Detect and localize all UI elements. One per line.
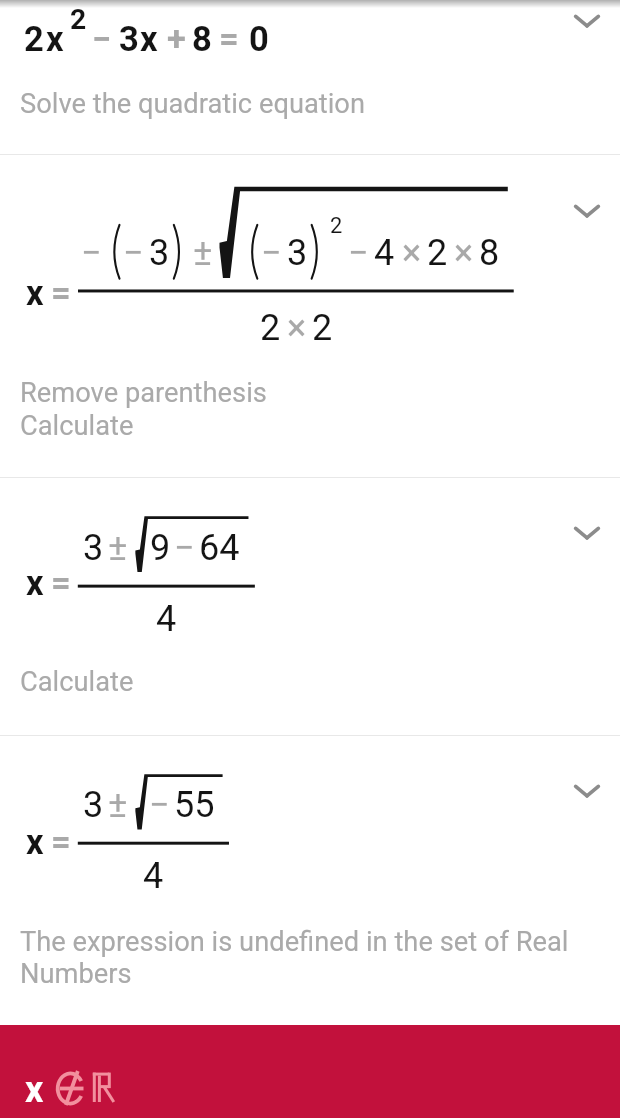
staticText: × (402, 232, 422, 274)
staticText: − (81, 232, 102, 274)
staticText: 2 (24, 19, 44, 59)
button[interactable]: x (0, 1025, 620, 1118)
staticText: 3 (83, 784, 104, 826)
staticText: The expression is undefined in the set o… (20, 926, 595, 990)
staticText: × (454, 232, 474, 274)
staticText: 0 (249, 19, 269, 59)
staticText: 2 (312, 307, 333, 349)
staticText: Solve the quadratic equation (20, 88, 605, 120)
staticText: − (123, 232, 144, 274)
staticText: − (174, 527, 195, 569)
staticText: 9 (150, 527, 171, 569)
staticText: 4 (143, 855, 164, 897)
staticText: = (51, 822, 71, 862)
staticText: = (51, 273, 71, 313)
button[interactable]: Expand step (563, 0, 611, 45)
staticText: − (149, 784, 170, 826)
staticText: 55 (174, 784, 215, 826)
staticText: ± (108, 527, 128, 569)
staticText: 2 (260, 307, 281, 349)
staticText: 8 (192, 19, 212, 59)
staticText: 4 (374, 232, 395, 274)
staticText: 2 (70, 3, 87, 36)
staticText: − (261, 232, 282, 274)
staticText: 2 (330, 213, 343, 239)
staticText: Calculate (20, 410, 605, 442)
staticText: x (25, 1069, 44, 1111)
staticText: ± (193, 232, 213, 274)
staticText: 3 (83, 527, 104, 569)
staticText: 8 (479, 232, 500, 274)
staticText: x (26, 822, 44, 862)
staticText: x (26, 273, 44, 313)
staticText: = (51, 563, 71, 603)
staticText: Calculate (20, 666, 605, 698)
staticText: ± (108, 784, 128, 826)
staticText: x (46, 19, 64, 59)
staticText: Remove parenthesis (20, 377, 605, 409)
staticText: 2 (427, 232, 448, 274)
staticText: × (287, 307, 307, 349)
staticText: 3 (149, 232, 170, 274)
staticText: = (219, 19, 239, 59)
staticText: + (167, 19, 186, 59)
button[interactable]: Expand step (563, 509, 611, 557)
staticText: 64 (199, 527, 240, 569)
staticText: 3 (287, 232, 308, 274)
staticText: 3 (119, 19, 139, 59)
staticText: − (92, 19, 112, 59)
staticText: x (26, 563, 44, 603)
button[interactable]: Expand step (563, 767, 611, 815)
staticText: x (140, 19, 158, 59)
staticText: 4 (156, 598, 177, 640)
staticText: − (348, 232, 369, 274)
button[interactable]: Expand step (563, 187, 611, 235)
